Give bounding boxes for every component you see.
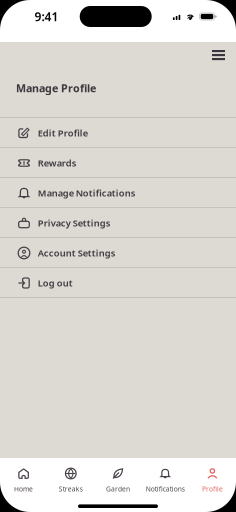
staticText: Garden [106,485,130,493]
staticText: Rewards [38,157,77,169]
staticText: 9:41 [34,8,58,24]
staticText: Manage Notifications [38,187,136,199]
button[interactable]: Menu [206,44,231,66]
staticText: Profile [202,485,223,493]
button[interactable]: Account Settings [0,238,236,268]
staticText: Streaks [59,485,83,493]
button[interactable]: Notifications [142,458,189,493]
staticText: Account Settings [38,247,116,259]
button[interactable]: Log out [0,268,236,298]
staticText: Log out [38,277,73,289]
button[interactable]: Garden [94,458,142,493]
staticText: Manage Profile [16,81,96,95]
button[interactable]: Edit Profile [0,118,236,148]
staticText: Home [14,485,33,493]
button[interactable]: Privacy Settings [0,208,236,238]
button[interactable]: Manage Notifications [0,178,236,208]
staticText: Privacy Settings [38,217,111,229]
button[interactable]: Streaks [47,458,94,493]
staticText: Edit Profile [38,127,88,139]
button[interactable]: Profile [189,458,236,493]
staticText: Notifications [146,485,185,493]
button[interactable]: Home [0,458,47,493]
button[interactable]: Rewards [0,148,236,178]
